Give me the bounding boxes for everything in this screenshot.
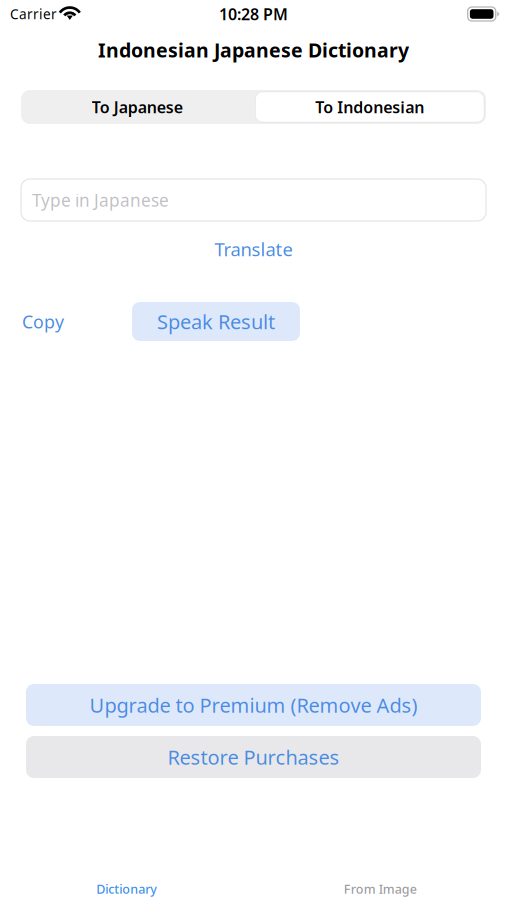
staticText: Upgrade to Premium (Remove Ads)	[89, 692, 417, 718]
staticText: Restore Purchases	[167, 744, 339, 770]
staticText: Dictionary	[96, 881, 157, 897]
staticText: Indonesian Japanese Dictionary	[98, 37, 409, 63]
staticText: From Image	[344, 881, 417, 897]
staticText: Type in Japanese	[32, 189, 169, 211]
staticText: To Indonesian	[315, 96, 424, 118]
button[interactable]: To Indonesian	[253, 90, 486, 124]
staticText: 10:28 PM	[219, 3, 288, 25]
button[interactable]: Dictionary	[0, 881, 253, 897]
staticText: To Japanese	[92, 96, 183, 118]
button[interactable]: Upgrade to Premium (Remove Ads)	[26, 684, 481, 726]
button[interactable]: From Image	[253, 881, 507, 897]
staticText: Copy	[22, 310, 64, 333]
staticText: Speak Result	[157, 308, 275, 335]
staticText: Translate	[214, 237, 292, 261]
button[interactable]: Translate	[204, 232, 302, 266]
button[interactable]: Copy	[21, 302, 72, 341]
button[interactable]: Restore Purchases	[26, 736, 481, 778]
button[interactable]: Speak Result	[132, 302, 300, 341]
staticText: Carrier	[10, 5, 57, 23]
button[interactable]: To Japanese	[21, 90, 253, 124]
